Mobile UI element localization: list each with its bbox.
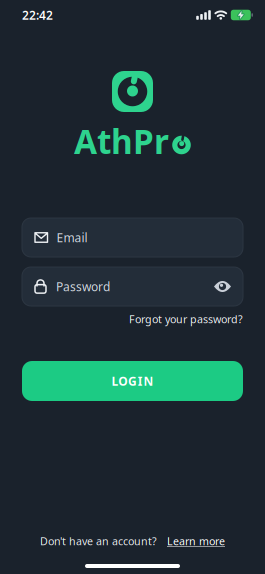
- staticText: AthPr: [74, 119, 169, 163]
- button[interactable]: Password: [22, 267, 243, 306]
- button[interactable]: Show password: [214, 281, 231, 292]
- button[interactable]: Forgot your password?: [129, 312, 243, 326]
- staticText: 22:42: [22, 7, 53, 23]
- staticText: Password: [56, 278, 110, 294]
- staticText: Email: [56, 229, 87, 245]
- button[interactable]: LOGIN: [22, 361, 243, 401]
- staticText: Forgot your password?: [129, 312, 243, 326]
- staticText: Learn more: [167, 534, 225, 548]
- staticText: LOGIN: [111, 373, 154, 389]
- staticText: Don't have an account?: [40, 534, 157, 548]
- button[interactable]: Learn more: [167, 534, 225, 548]
- button[interactable]: Email: [22, 218, 243, 257]
